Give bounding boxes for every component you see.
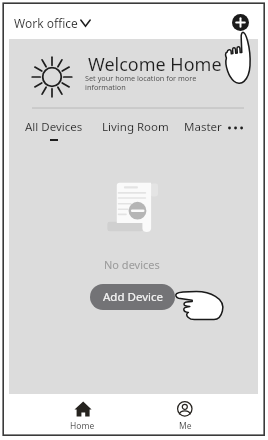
button[interactable]: Me — [161, 401, 209, 435]
staticText: Add Device — [103, 289, 163, 305]
button[interactable]: Master — [184, 119, 222, 135]
staticText: Work office — [14, 15, 78, 31]
button[interactable]: All Devices — [25, 119, 83, 141]
button[interactable]: Welcome Home — [9, 39, 258, 109]
button[interactable]: Home — [58, 401, 106, 435]
button[interactable]: Living Room — [102, 119, 169, 135]
button[interactable]: Add — [232, 14, 249, 31]
staticText: Me — [179, 420, 192, 432]
staticText: Home — [70, 420, 95, 432]
button[interactable]: Work office — [14, 15, 91, 31]
staticText: Set your home location for more informat… — [85, 73, 197, 92]
staticText: All Devices — [25, 119, 83, 135]
staticText: Living Room — [102, 119, 169, 135]
button[interactable]: Add Device — [90, 284, 175, 310]
staticText: Master — [184, 119, 222, 135]
staticText: Welcome Home — [88, 52, 222, 77]
staticText: No devices — [104, 257, 160, 272]
button[interactable]: More rooms — [228, 122, 250, 134]
